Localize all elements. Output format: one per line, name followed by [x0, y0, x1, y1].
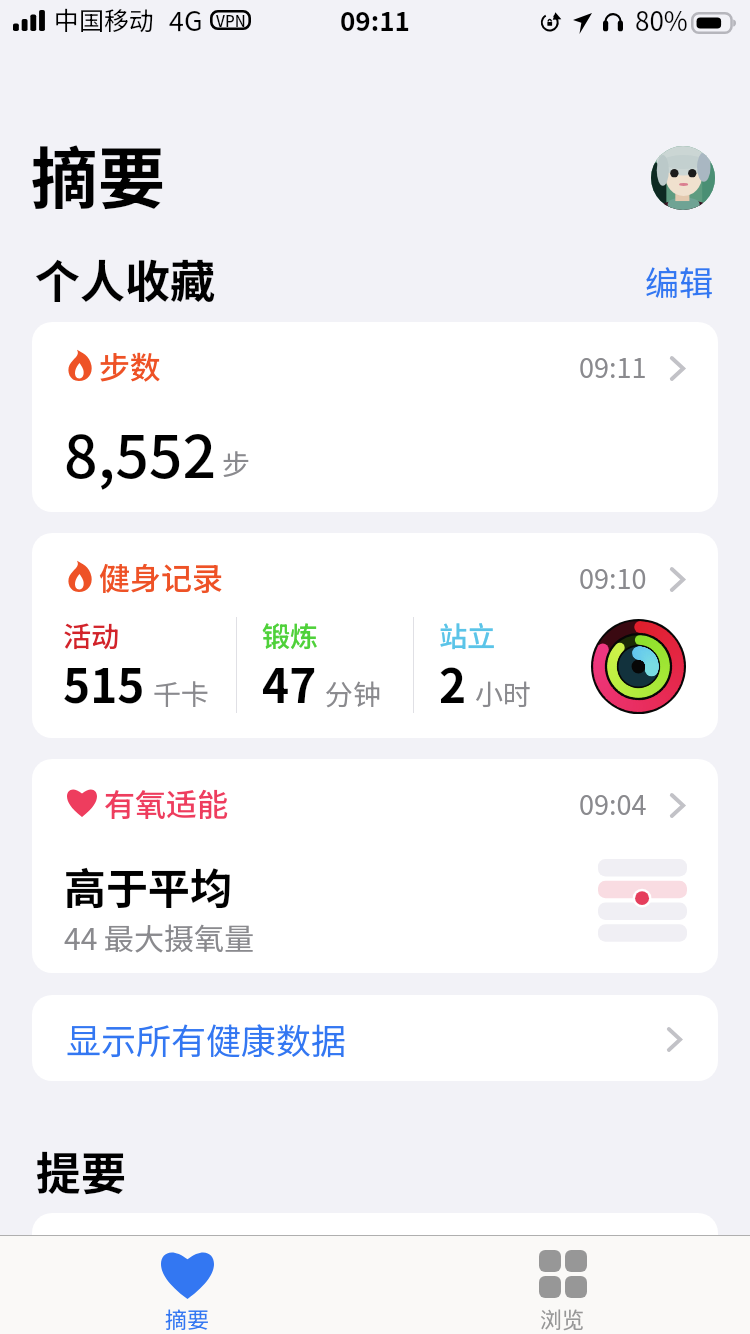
staticText: 小时	[475, 673, 532, 714]
staticText: 站立	[439, 615, 496, 656]
staticText: 80%	[635, 1, 688, 39]
button[interactable]	[32, 1213, 718, 1273]
button[interactable]: 步数	[32, 322, 718, 512]
staticText: 摘要	[31, 125, 165, 222]
staticText: 分钟	[325, 673, 382, 714]
staticText: VPN	[216, 10, 246, 30]
staticText: 09:10	[579, 558, 647, 597]
staticText: 中国移动	[54, 1, 155, 37]
staticText: 2	[439, 650, 467, 717]
staticText: 摘要	[165, 1302, 210, 1334]
staticText: 提要	[36, 1138, 127, 1203]
staticText: 8,552	[64, 410, 217, 495]
button[interactable]: 编辑	[637, 253, 721, 310]
staticText: 锻炼	[262, 615, 319, 656]
staticText: 47	[262, 650, 317, 717]
staticText: 步数	[99, 343, 161, 387]
staticText: 千卡	[153, 673, 210, 714]
button[interactable]: 显示所有健康数据	[32, 995, 718, 1081]
staticText: 活动	[63, 615, 120, 656]
staticText: 显示所有健康数据	[66, 1013, 347, 1064]
staticText: 步	[222, 443, 251, 484]
staticText: 健身记录	[99, 554, 223, 598]
staticText: 09:11	[579, 347, 647, 386]
staticText: 高于平均	[64, 855, 233, 916]
staticText: 09:04	[579, 784, 647, 823]
button[interactable]: 浏览	[375, 1236, 750, 1334]
staticText: 浏览	[540, 1302, 585, 1334]
staticText: 09:11	[340, 1, 410, 39]
button[interactable]: 健身记录	[32, 533, 718, 738]
staticText: 有氧适能	[104, 780, 228, 824]
staticText: 个人收藏	[35, 246, 216, 311]
staticText: 515	[63, 650, 145, 717]
staticText: 编辑	[645, 257, 713, 306]
button[interactable]: 摘要	[0, 1236, 375, 1334]
button[interactable]: Profile	[651, 146, 715, 210]
staticText: 4G	[169, 0, 203, 39]
staticText: 44 最大摄氧量	[64, 915, 255, 958]
button[interactable]: 有氧适能	[32, 759, 718, 973]
